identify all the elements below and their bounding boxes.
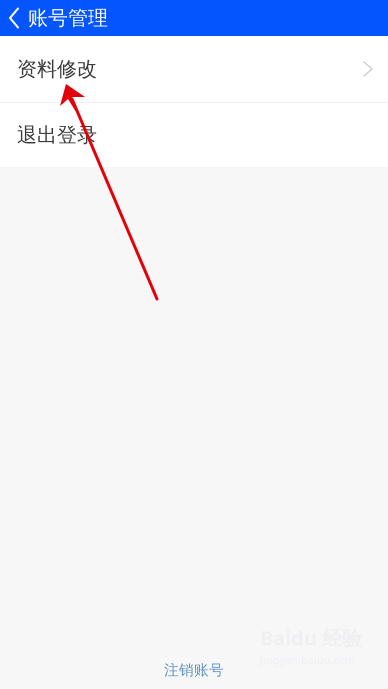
staticText: Baidu 经验	[260, 624, 362, 651]
button[interactable]: 注销账号	[0, 653, 388, 687]
button[interactable]: 退出登录	[0, 103, 388, 167]
staticText: 资料修改	[17, 57, 97, 81]
button[interactable]: 资料修改	[0, 36, 388, 102]
staticText: 注销账号	[164, 661, 224, 679]
staticText: 退出登录	[17, 123, 97, 147]
button[interactable]: Back	[0, 0, 28, 36]
staticText: 账号管理	[28, 6, 108, 30]
